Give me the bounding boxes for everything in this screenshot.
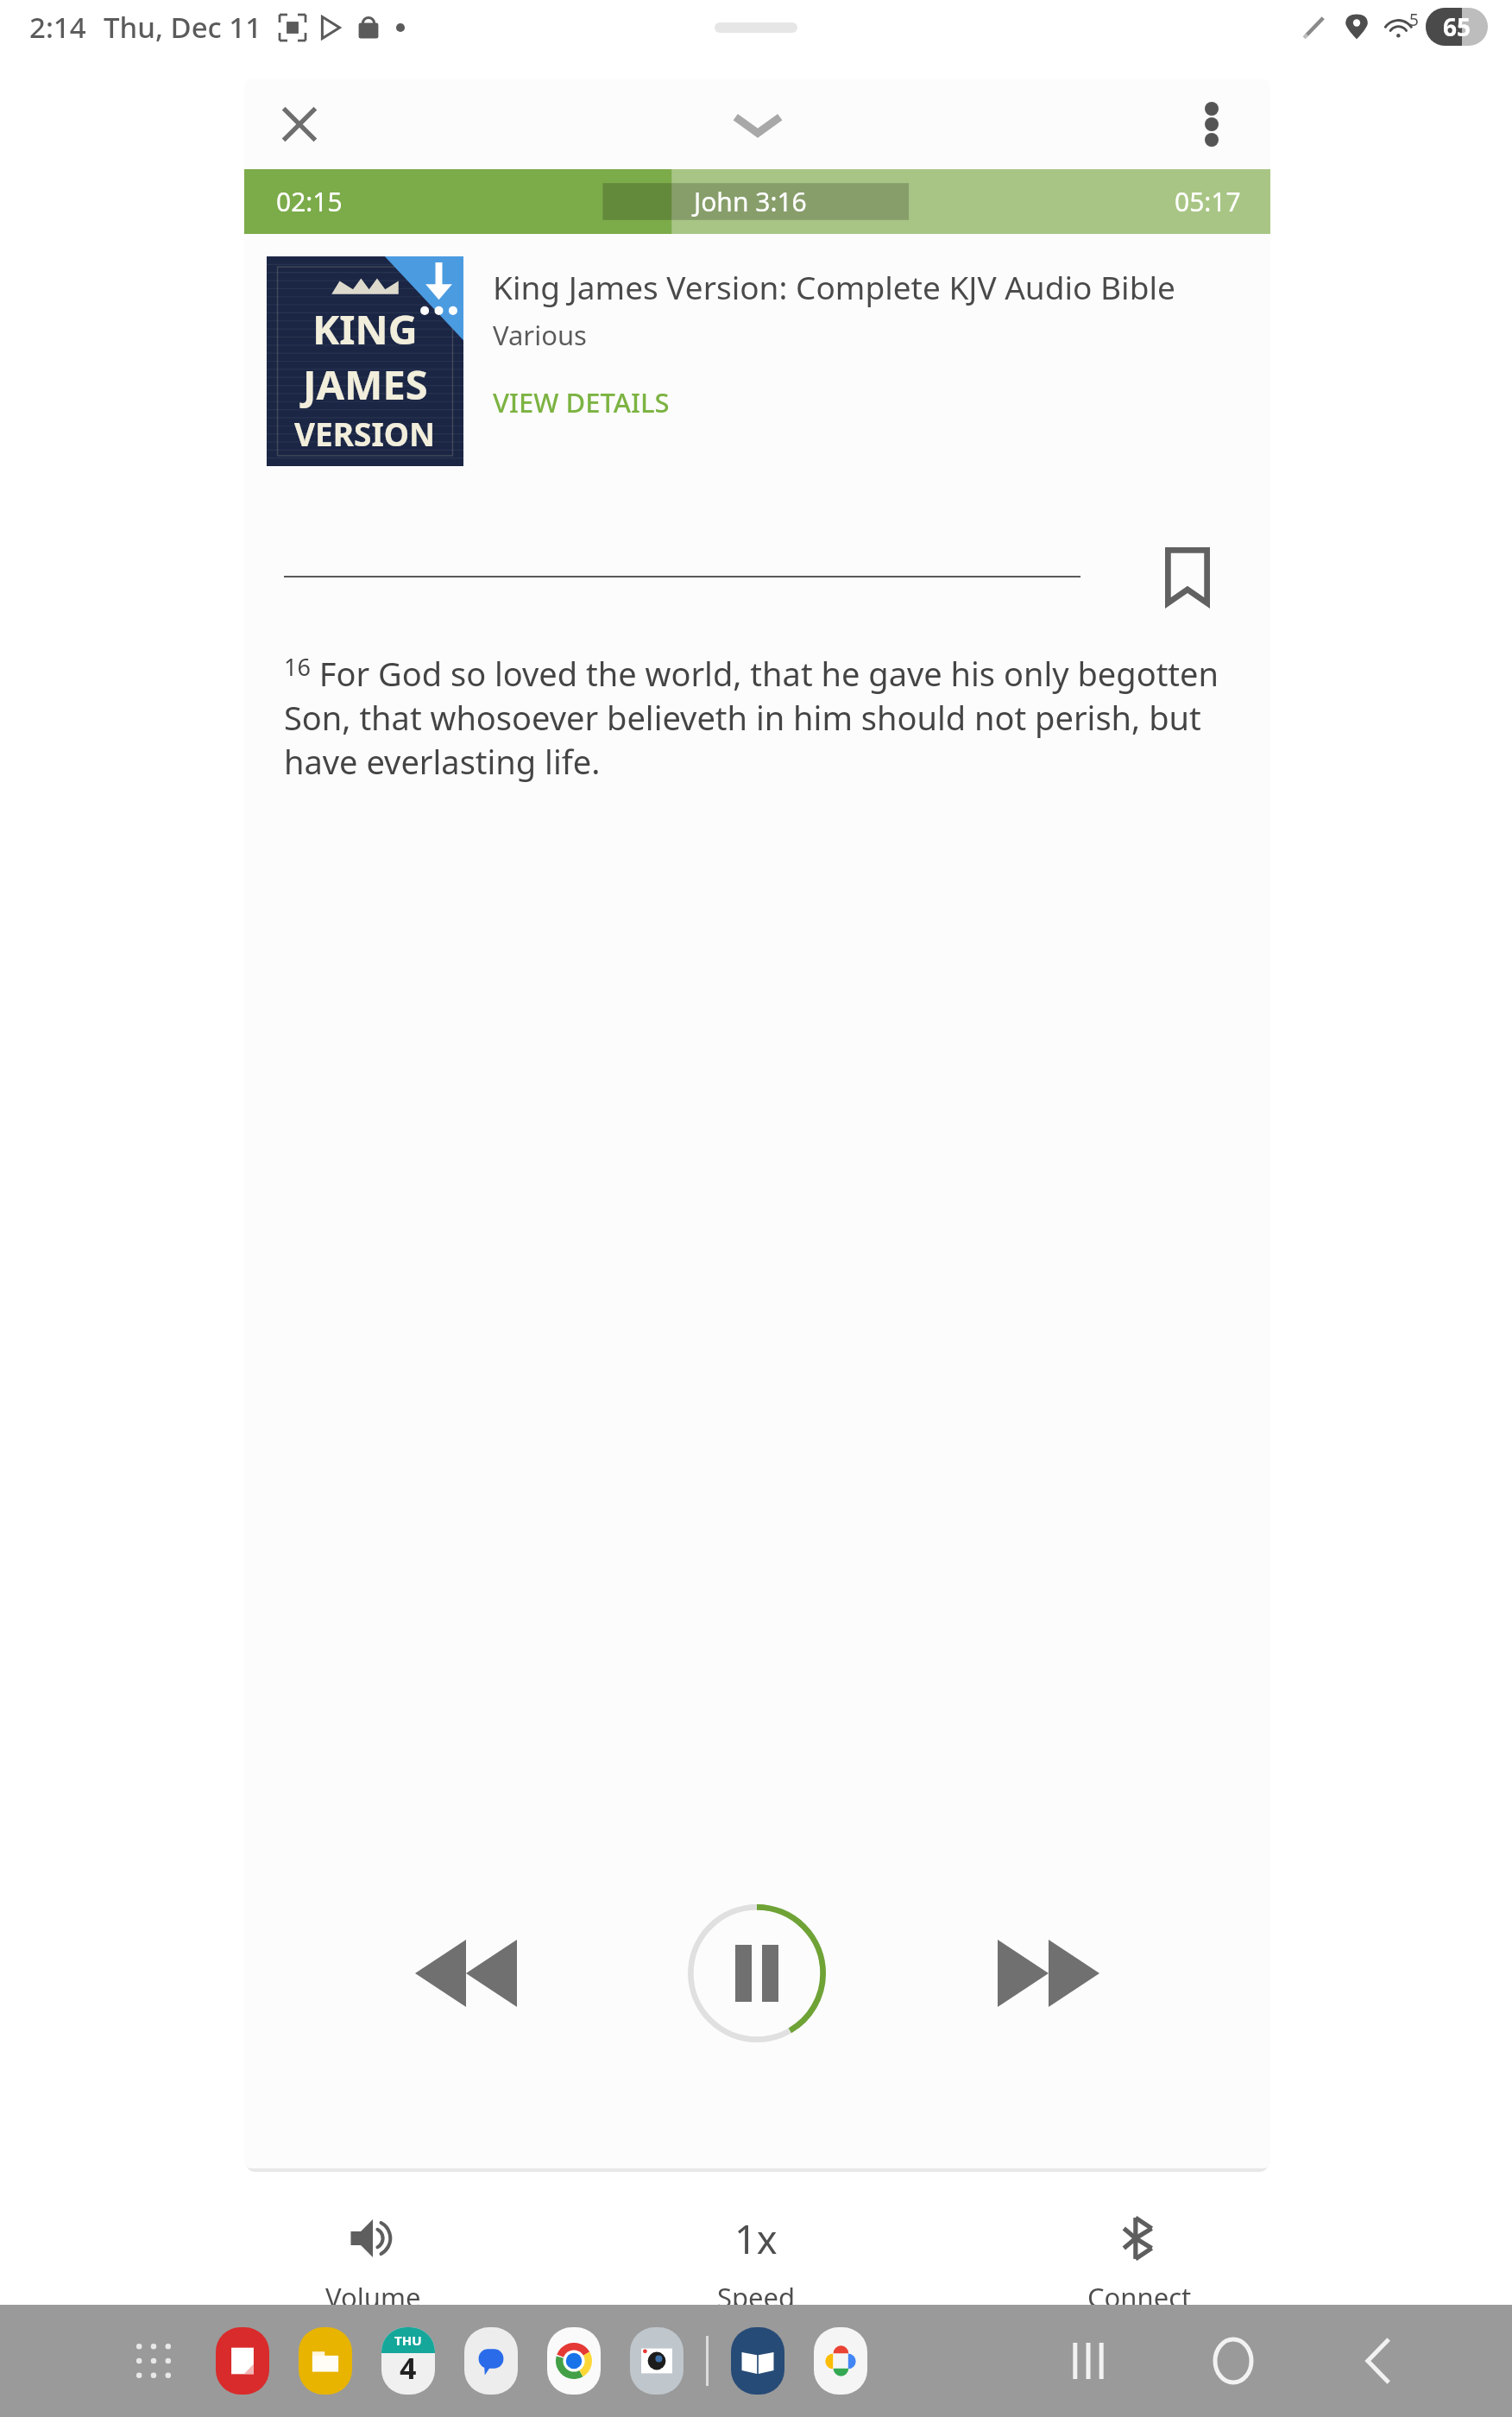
staticText: 4 <box>400 2348 417 2388</box>
button[interactable] <box>299 2327 352 2395</box>
button[interactable] <box>547 2327 601 2395</box>
staticText: 16 For God so loved the world, that he g… <box>284 651 1231 784</box>
staticText: JAMES <box>303 357 428 412</box>
staticText: 2:14 <box>29 8 86 47</box>
button[interactable]: Volume <box>181 2181 564 2345</box>
button[interactable] <box>216 2327 269 2395</box>
button[interactable]: 02:15 <box>244 169 1270 234</box>
staticText: 1x <box>734 2212 778 2265</box>
button[interactable]: Home <box>1186 2313 1281 2408</box>
button[interactable]: Recents <box>1041 2313 1136 2408</box>
button[interactable]: VIEW DETAILS <box>493 381 670 424</box>
staticText: Connect <box>1087 2279 1192 2315</box>
staticText: 5 <box>1409 9 1419 31</box>
staticText: John 3:16 <box>694 184 807 219</box>
button[interactable]: 1x <box>564 2181 948 2345</box>
button[interactable]: Rewind <box>244 1861 688 2086</box>
staticText: Speed <box>717 2279 796 2315</box>
button[interactable]: Bookmark <box>1151 540 1224 613</box>
staticText: 05:17 <box>1175 184 1241 219</box>
other: Stylus <box>1300 12 1329 41</box>
staticText: THU <box>394 2332 422 2349</box>
button[interactable] <box>814 2327 867 2395</box>
button[interactable] <box>129 2337 178 2385</box>
button[interactable]: Back <box>1331 2313 1426 2408</box>
button[interactable] <box>464 2327 518 2395</box>
staticText: Thu, Dec 11 <box>104 8 262 47</box>
button[interactable]: Fast forward <box>826 1861 1270 2086</box>
staticText: 02:15 <box>276 184 343 219</box>
staticText: 65 <box>1443 10 1471 43</box>
staticText: Various <box>493 317 587 353</box>
staticText: VIEW DETAILS <box>493 384 670 420</box>
staticText: VERSION <box>294 412 436 455</box>
staticText: King James Version: Complete KJV Audio B… <box>493 265 1175 308</box>
button[interactable] <box>630 2327 684 2395</box>
button[interactable]: Collapse <box>706 88 810 161</box>
staticText: Volume <box>325 2279 421 2315</box>
button[interactable]: Pause <box>688 1904 826 2042</box>
staticText: KING <box>312 301 418 357</box>
button[interactable] <box>731 2327 784 2395</box>
button[interactable]: KING <box>267 256 463 466</box>
button[interactable]: More options <box>1175 88 1248 161</box>
button[interactable]: Close <box>263 88 336 161</box>
button[interactable]: Connect <box>948 2181 1331 2345</box>
button[interactable]: THU <box>381 2327 435 2395</box>
